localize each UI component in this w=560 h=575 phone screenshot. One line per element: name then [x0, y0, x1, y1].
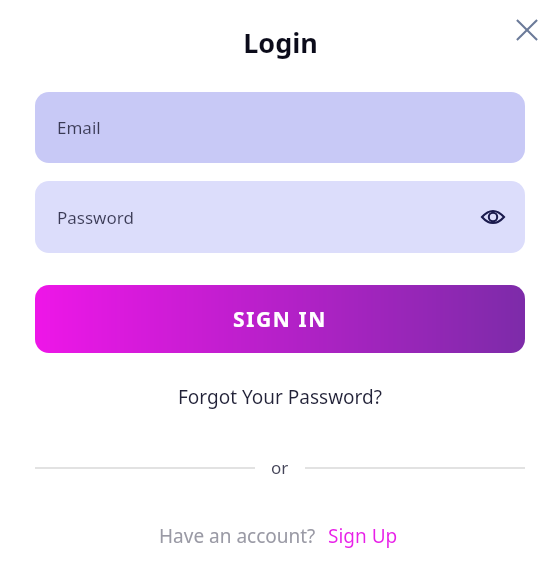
staticText: Have an account?: [159, 523, 316, 549]
staticText: Password: [57, 206, 134, 229]
button[interactable]: Show password: [473, 197, 513, 237]
staticText: Email: [57, 116, 101, 139]
staticText: Forgot Your Password?: [178, 384, 383, 410]
button[interactable]: Close: [510, 13, 544, 47]
button[interactable]: SIGN IN: [35, 285, 525, 353]
staticText: Login: [243, 24, 318, 61]
staticText: or: [271, 456, 289, 479]
staticText: Sign Up: [328, 523, 398, 549]
button[interactable]: Sign Up: [324, 521, 402, 551]
staticText: SIGN IN: [233, 305, 327, 334]
button[interactable]: Email: [35, 92, 525, 163]
button[interactable]: Forgot Your Password?: [168, 380, 393, 414]
button[interactable]: Password: [35, 181, 525, 253]
